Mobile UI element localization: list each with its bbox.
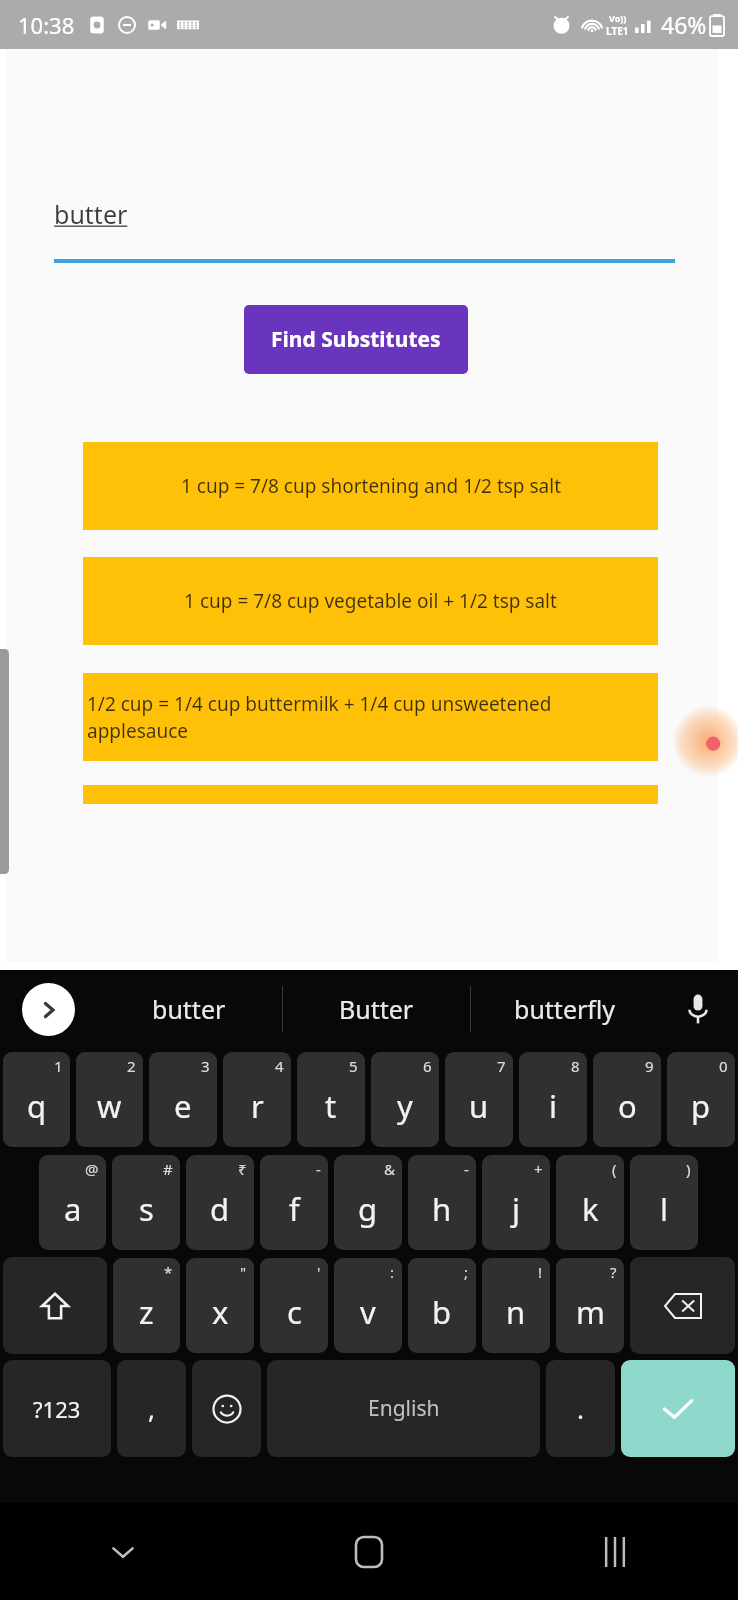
button[interactable]: 4	[223, 1052, 291, 1147]
staticText: ,	[148, 1391, 155, 1426]
button[interactable]: Find Substitutes	[244, 305, 468, 374]
button[interactable]: 2	[76, 1052, 143, 1147]
staticText: 1 cup = 7/8 cup shortening and 1/2 tsp s…	[181, 473, 561, 499]
button[interactable]: *	[113, 1258, 180, 1353]
button[interactable]: Enter	[621, 1360, 735, 1457]
staticText: -	[464, 1159, 469, 1179]
button[interactable]: 3	[149, 1052, 217, 1147]
staticText: 1	[54, 1056, 63, 1076]
staticText: +	[534, 1159, 543, 1179]
button[interactable]: 5	[297, 1052, 365, 1147]
staticText: 0	[719, 1056, 728, 1076]
button[interactable]: English	[267, 1360, 540, 1457]
button[interactable]: @	[39, 1155, 106, 1250]
staticText: a	[64, 1188, 82, 1230]
button[interactable]: 1 cup = 7/8 cup vegetable oil + 1/2 tsp …	[83, 557, 658, 645]
staticText: #	[163, 1159, 173, 1179]
staticText: l	[660, 1188, 668, 1230]
button[interactable]: .	[546, 1360, 615, 1457]
staticText: x	[212, 1291, 229, 1333]
staticText: 9	[645, 1056, 654, 1076]
staticText: :	[390, 1262, 395, 1282]
staticText: butter	[54, 197, 128, 231]
staticText: m	[576, 1291, 605, 1333]
button[interactable]: '	[260, 1258, 328, 1353]
button[interactable]: Butter	[283, 970, 470, 1048]
staticText: ?123	[33, 1394, 81, 1424]
button[interactable]: (	[556, 1155, 624, 1250]
button[interactable]: Emoji	[192, 1360, 261, 1457]
button[interactable]: 1/2 cup = 1/4 cup buttermilk + 1/4 cup u…	[83, 673, 658, 761]
button[interactable]: Home	[321, 1504, 417, 1600]
staticText: *	[164, 1262, 173, 1282]
staticText: butterfly	[514, 992, 616, 1026]
staticText: v	[360, 1291, 376, 1333]
button[interactable]: Voice input	[658, 970, 738, 1048]
staticText: 8	[571, 1056, 580, 1076]
button[interactable]: Backspace	[630, 1257, 735, 1354]
staticText: .	[577, 1391, 584, 1426]
staticText: ₹	[238, 1159, 247, 1179]
staticText: r	[251, 1085, 264, 1127]
button[interactable]: ?	[556, 1258, 624, 1353]
button[interactable]: 1	[3, 1052, 70, 1147]
button[interactable]: Recents	[567, 1504, 663, 1600]
button[interactable]: -	[408, 1155, 476, 1250]
staticText: d	[210, 1188, 230, 1230]
staticText: j	[512, 1188, 520, 1230]
button[interactable]: Shift	[3, 1257, 107, 1354]
staticText: h	[432, 1188, 452, 1230]
button[interactable]: 8	[519, 1052, 587, 1147]
staticText: '	[317, 1262, 321, 1282]
staticText: English	[368, 1394, 440, 1423]
staticText: q	[27, 1085, 47, 1127]
button[interactable]: &	[334, 1155, 402, 1250]
staticText: f	[289, 1188, 300, 1230]
button[interactable]: butterfly	[471, 970, 658, 1048]
button[interactable]: 1 cup = 7/8 cup shortening and 1/2 tsp s…	[83, 442, 658, 530]
staticText: 2	[127, 1056, 136, 1076]
staticText: e	[174, 1085, 192, 1127]
button[interactable]: #	[112, 1155, 180, 1250]
button[interactable]: -	[260, 1155, 328, 1250]
staticText: p	[691, 1085, 711, 1127]
staticText: o	[618, 1085, 637, 1127]
button[interactable]: ,	[117, 1360, 186, 1457]
staticText: &	[384, 1159, 395, 1179]
staticText: Butter	[339, 992, 414, 1026]
button[interactable]: !	[482, 1258, 550, 1353]
staticText: b	[432, 1291, 452, 1333]
staticText: w	[97, 1085, 122, 1127]
button[interactable]: 9	[593, 1052, 661, 1147]
button[interactable]: Expand suggestions	[0, 970, 96, 1048]
button[interactable]: +	[482, 1155, 550, 1250]
button[interactable]: :	[334, 1258, 402, 1353]
button[interactable]: butter	[96, 970, 282, 1048]
staticText: g	[358, 1188, 378, 1230]
staticText: 3	[201, 1056, 210, 1076]
button[interactable]: ₹	[186, 1155, 254, 1250]
button[interactable]: ;	[408, 1258, 476, 1353]
staticText: t	[325, 1085, 337, 1127]
button[interactable]: 6	[371, 1052, 439, 1147]
button[interactable]: "	[186, 1258, 254, 1353]
staticText: 4	[275, 1056, 284, 1076]
staticText: k	[582, 1188, 599, 1230]
staticText: i	[549, 1085, 557, 1127]
button[interactable]: butter	[54, 197, 675, 263]
staticText: z	[139, 1291, 154, 1333]
staticText: 46%	[661, 9, 707, 40]
staticText: -	[316, 1159, 321, 1179]
staticText: c	[287, 1291, 302, 1333]
staticText: butter	[152, 992, 226, 1026]
button[interactable]: Back	[75, 1504, 171, 1600]
button[interactable]: )	[630, 1155, 698, 1250]
staticText: s	[139, 1188, 154, 1230]
button[interactable]: ?123	[3, 1360, 111, 1457]
button[interactable]: 0	[667, 1052, 735, 1147]
button[interactable]: 7	[445, 1052, 513, 1147]
staticText: LTE1	[606, 24, 629, 38]
staticText: ?	[610, 1262, 617, 1282]
staticText: @	[85, 1159, 99, 1179]
